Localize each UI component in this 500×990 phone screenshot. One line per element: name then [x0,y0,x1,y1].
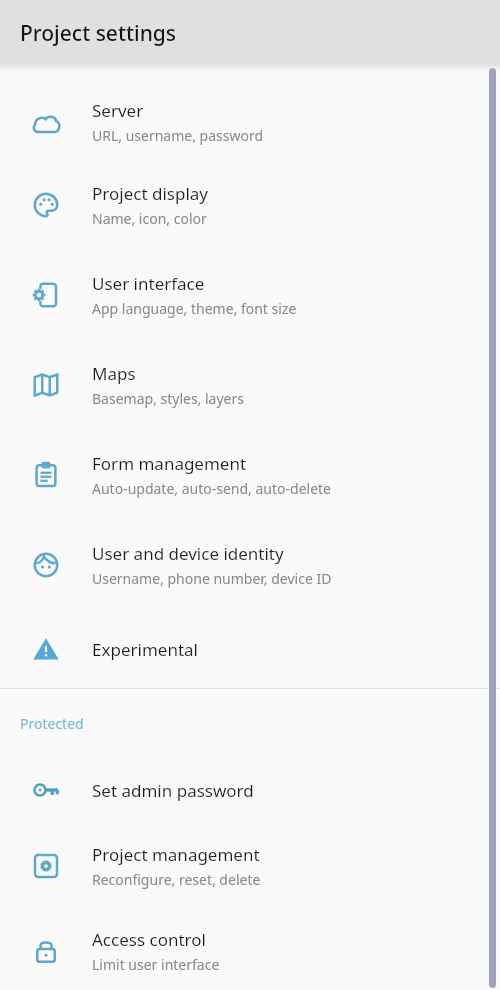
button[interactable]: Access control [0,911,500,990]
staticText: URL, username, password [92,126,264,145]
staticText: Auto-update, auto-send, auto-delete [92,479,331,498]
staticText: Protected [20,714,84,733]
staticText: Server [92,99,144,122]
button[interactable]: Project management [0,821,500,911]
staticText: Experimental [92,638,198,661]
staticText: Limit user interface [92,955,220,974]
staticText: Form management [92,452,247,475]
staticText: Set admin password [92,779,254,802]
staticText: Basemap, styles, layers [92,389,244,408]
staticText: Reconfigure, reset, delete [92,870,261,889]
staticText: Project settings [20,19,177,48]
staticText: App language, theme, font size [92,299,297,318]
button[interactable]: Experimental [0,610,500,688]
button[interactable]: Maps [0,340,500,430]
staticText: Project management [92,843,260,866]
staticText: Username, phone number, device ID [92,569,332,588]
button[interactable]: Server [0,84,500,160]
staticText: Access control [92,928,206,951]
button[interactable]: Set admin password [0,759,500,821]
staticText: Project display [92,182,208,205]
staticText: User interface [92,272,205,295]
staticText: Name, icon, color [92,209,207,228]
staticText: Maps [92,362,136,385]
staticText: User and device identity [92,542,284,565]
button[interactable]: Form management [0,430,500,520]
button[interactable]: User and device identity [0,520,500,610]
button[interactable]: Project display [0,160,500,250]
button[interactable]: User interface [0,250,500,340]
